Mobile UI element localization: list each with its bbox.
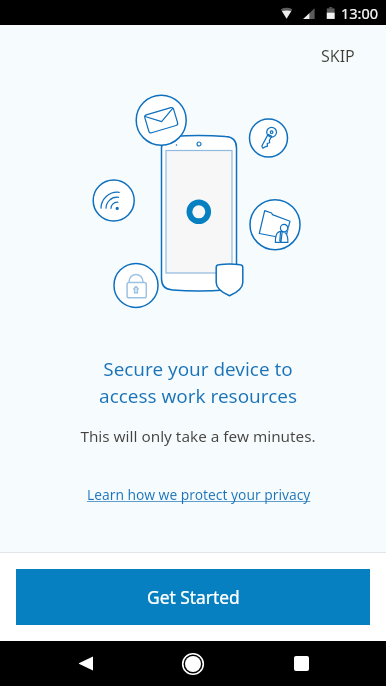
button[interactable]: SKIP [297,37,386,71]
staticText: Learn how we protect your privacy [87,485,311,504]
button[interactable]: Learn how we protect your privacy [77,481,321,508]
button[interactable]: Get Started [16,569,370,625]
staticText: This will only take a few minutes. [10,426,386,447]
button[interactable]: Recent apps [274,641,328,686]
staticText: Secure your device to access work resour… [10,356,386,409]
staticText: SKIP [321,45,355,67]
button[interactable]: Home [166,641,220,686]
staticText: Get Started [147,585,240,609]
button[interactable]: Back [58,641,112,686]
staticText: 13:00 [341,3,379,23]
